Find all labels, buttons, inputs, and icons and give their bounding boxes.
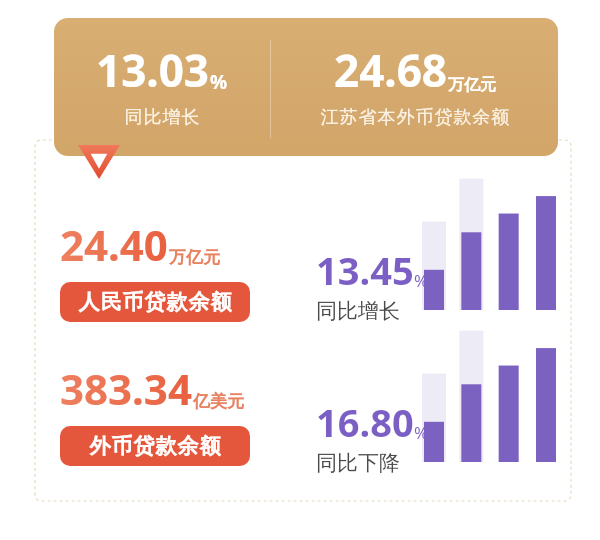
staticText: 外币贷款余额	[89, 433, 221, 459]
staticText: 同比增长	[316, 298, 400, 324]
button[interactable]: 人民币贷款余额	[60, 282, 250, 322]
staticText: 383.34	[60, 360, 192, 417]
staticText: 亿美元	[193, 391, 244, 412]
staticText: 13.03	[96, 40, 210, 100]
staticText: 13.45	[316, 244, 414, 296]
staticText: 同比增长	[124, 106, 200, 129]
other: Pointer	[78, 145, 120, 179]
staticText: 人民币贷款余额	[78, 289, 232, 315]
staticText: %	[210, 69, 228, 95]
staticText: 16.80	[316, 396, 414, 448]
staticText: 万亿元	[448, 75, 496, 95]
staticText: %	[414, 421, 429, 444]
staticText: 同比下降	[316, 450, 400, 476]
button[interactable]: 外币贷款余额	[60, 426, 250, 466]
staticText: 24.40	[60, 216, 168, 273]
button[interactable]: 13.03	[54, 18, 558, 156]
staticText: 万亿元	[169, 247, 220, 268]
staticText: 24.68	[334, 40, 448, 100]
staticText: 江苏省本外币贷款余额	[320, 106, 510, 129]
staticText: %	[414, 269, 429, 292]
